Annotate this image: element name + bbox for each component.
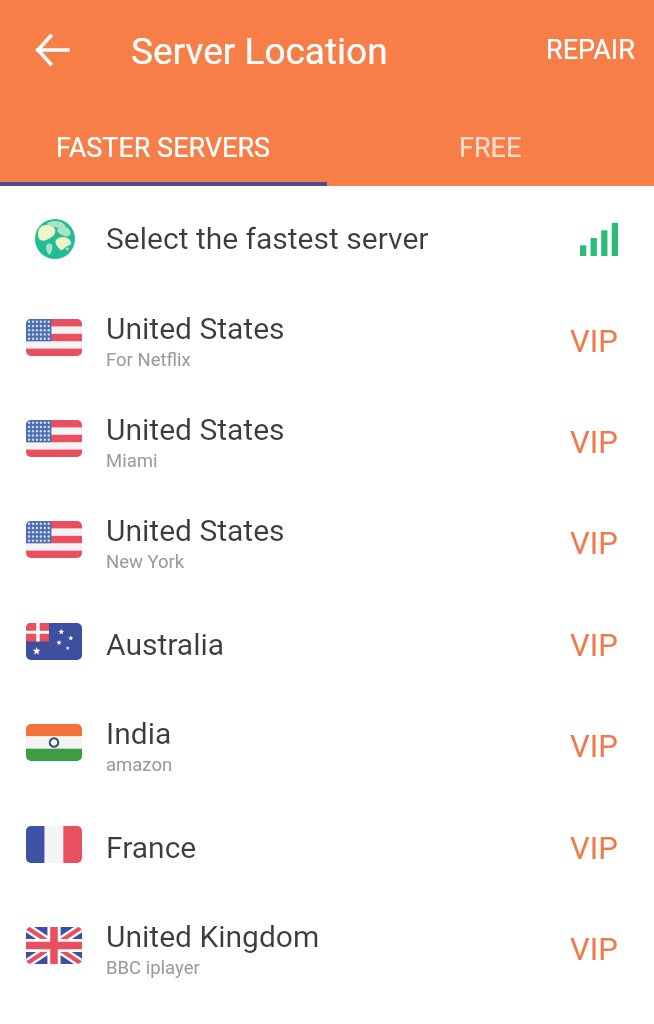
button[interactable]: FASTER SERVERS	[0, 132, 327, 164]
button[interactable]: United States	[0, 391, 654, 492]
button[interactable]: United States	[0, 290, 654, 391]
staticText: Select the fastest server	[106, 221, 429, 256]
staticText: France	[106, 830, 197, 865]
staticText: VIP	[570, 728, 618, 764]
staticText: Server Location	[131, 30, 388, 73]
button[interactable]: United States	[0, 492, 654, 593]
button[interactable]: Back	[18, 15, 88, 85]
staticText: New York	[106, 551, 185, 573]
staticText: United Kingdom	[106, 919, 320, 954]
staticText: Miami	[106, 450, 158, 472]
button[interactable]: REPAIR	[528, 21, 653, 79]
staticText: BBC iplayer	[106, 957, 200, 979]
button[interactable]: Australia	[0, 594, 654, 695]
staticText: VIP	[570, 525, 618, 561]
button[interactable]: Select the fastest server	[0, 188, 654, 289]
staticText: India	[106, 716, 172, 751]
button[interactable]: India	[0, 695, 654, 796]
other: Signal strength	[580, 222, 618, 256]
staticText: FREE	[459, 132, 522, 164]
button[interactable]: France	[0, 797, 654, 898]
staticText: For Netflix	[106, 349, 191, 371]
staticText: United States	[106, 513, 285, 548]
button[interactable]: United Kingdom	[0, 898, 654, 999]
staticText: amazon	[106, 754, 173, 776]
staticText: VIP	[570, 830, 618, 866]
staticText: FASTER SERVERS	[56, 132, 271, 164]
staticText: VIP	[570, 931, 618, 967]
staticText: VIP	[570, 424, 618, 460]
button[interactable]: FREE	[327, 132, 654, 164]
staticText: VIP	[570, 323, 618, 359]
staticText: United States	[106, 311, 285, 346]
staticText: REPAIR	[546, 34, 635, 66]
staticText: VIP	[570, 627, 618, 663]
staticText: Australia	[106, 627, 225, 662]
staticText: United States	[106, 412, 285, 447]
